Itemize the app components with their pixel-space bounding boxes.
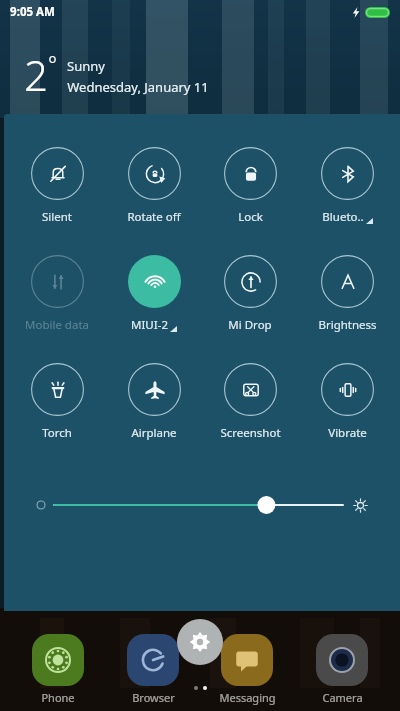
staticText: Mobile data <box>25 317 89 333</box>
staticText: Phone <box>41 690 75 705</box>
button[interactable]: Messaging <box>205 634 289 705</box>
button[interactable]: Camera <box>300 634 384 705</box>
button[interactable]: Silent <box>13 147 101 225</box>
button[interactable]: Mi Drop <box>206 255 294 333</box>
button[interactable]: Browser <box>111 634 195 705</box>
staticText: Lock <box>238 209 263 225</box>
staticText: Blueto.. <box>322 209 364 225</box>
staticText: Messaging <box>219 690 276 705</box>
button[interactable]: Screenshot <box>206 363 294 441</box>
button[interactable]: MIUI-2 <box>110 255 198 333</box>
button[interactable]: Phone <box>16 634 100 705</box>
button[interactable]: Blueto.. <box>303 147 391 225</box>
button[interactable]: Brightness slider <box>36 490 368 520</box>
button[interactable]: Torch <box>13 363 101 441</box>
button[interactable]: Rotate off <box>110 147 198 225</box>
button[interactable]: Vibrate <box>303 363 391 441</box>
button[interactable]: Airplane <box>110 363 198 441</box>
staticText: Airplane <box>131 425 177 441</box>
staticText: Wednesday, January 11 <box>67 78 209 96</box>
button[interactable]: Brightness <box>303 255 391 333</box>
staticText: Silent <box>42 209 72 225</box>
staticText: Camera <box>322 690 363 705</box>
button[interactable]: Lock <box>206 147 294 225</box>
staticText: Browser <box>132 690 175 705</box>
button[interactable]: Mobile data <box>13 255 101 333</box>
staticText: 9:05 AM <box>10 4 55 20</box>
staticText: Vibrate <box>328 425 367 441</box>
staticText: Torch <box>42 425 72 441</box>
staticText: MIUI-2 <box>131 317 168 333</box>
staticText: Rotate off <box>127 209 181 225</box>
staticText: ° <box>48 50 57 79</box>
staticText: Screenshot <box>220 425 281 441</box>
staticText: Mi Drop <box>228 317 272 333</box>
staticText: Sunny <box>67 57 105 75</box>
button[interactable]: Settings <box>177 619 223 665</box>
staticText: Brightness <box>318 317 377 333</box>
staticText: 2 <box>24 46 48 103</box>
